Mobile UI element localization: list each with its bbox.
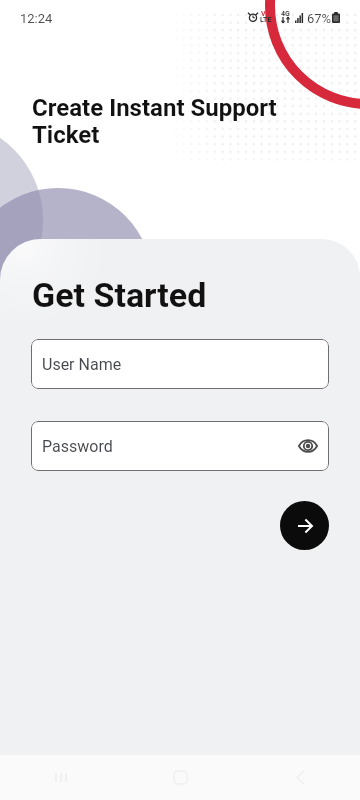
staticText: 67% <box>307 11 332 26</box>
staticText: Password <box>42 437 113 456</box>
button[interactable]: Password <box>31 421 329 471</box>
button[interactable]: Continue <box>280 501 329 550</box>
button[interactable]: User Name <box>31 339 329 389</box>
staticText: Vo <box>261 10 270 18</box>
staticText: 4G <box>281 10 290 18</box>
staticText: LTE <box>260 16 272 24</box>
staticText: 12:24 <box>20 11 53 26</box>
staticText: Create Instant Support Ticket <box>32 94 284 149</box>
other: Show password <box>298 439 318 453</box>
staticText: User Name <box>42 355 122 374</box>
staticText: Get Started <box>32 275 207 315</box>
